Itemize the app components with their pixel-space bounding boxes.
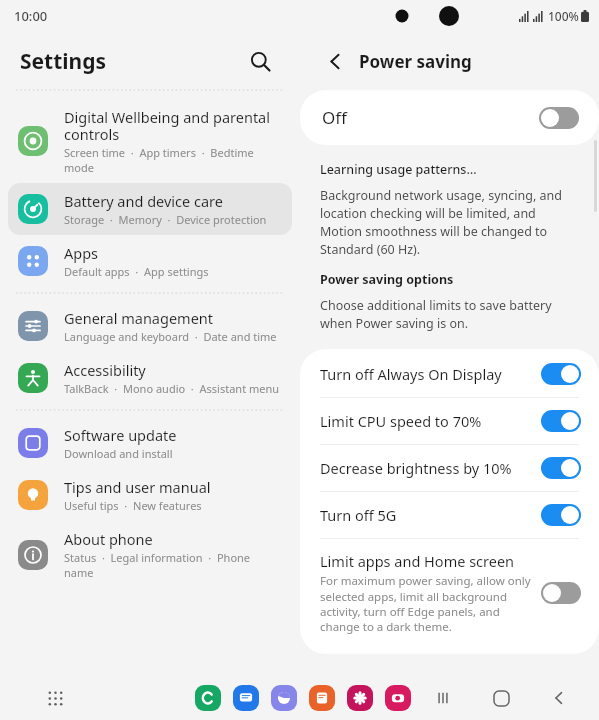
staticText: General management — [64, 308, 214, 328]
button[interactable]: Limit apps and Home screen — [300, 539, 599, 646]
button[interactable]: Home — [487, 684, 515, 712]
staticText: Choose additional limits to save battery… — [320, 297, 579, 332]
button[interactable]: Battery and device care — [8, 183, 292, 235]
staticText: 100% — [548, 8, 579, 24]
button[interactable]: Limit CPU speed to 70% — [300, 398, 599, 444]
staticText: Useful tips · New features — [64, 498, 202, 513]
staticText: Status · Legal information · Phone name — [64, 550, 280, 580]
staticText: Background network usage, syncing, and l… — [320, 187, 579, 258]
staticText: Decrease brightness by 10% — [320, 458, 512, 478]
button[interactable]: Messages — [233, 685, 259, 711]
button[interactable]: Back — [545, 684, 573, 712]
button[interactable]: Notes — [309, 685, 335, 711]
staticText: Default apps · App settings — [64, 264, 209, 279]
staticText: Software update — [64, 425, 177, 445]
button[interactable]: General management — [8, 300, 292, 352]
button[interactable]: On — [541, 363, 581, 385]
staticText: Power saving — [359, 50, 472, 73]
button[interactable]: Off — [300, 90, 599, 145]
button[interactable]: Back — [318, 44, 352, 78]
button[interactable]: Internet — [271, 685, 297, 711]
staticText: Off — [322, 106, 347, 129]
staticText: Apps — [64, 243, 99, 263]
staticText: 10:00 — [14, 7, 48, 25]
button[interactable]: On — [541, 410, 581, 432]
button[interactable]: Phone — [195, 685, 221, 711]
button[interactable]: On — [541, 504, 581, 526]
button[interactable]: Camera — [385, 685, 411, 711]
button[interactable]: Turn off 5G — [300, 492, 599, 538]
button[interactable]: On — [541, 457, 581, 479]
button[interactable]: Search — [240, 41, 280, 81]
button[interactable]: Software update — [8, 417, 292, 469]
staticText: About phone — [64, 529, 153, 549]
staticText: Language and keyboard · Date and time — [64, 329, 277, 344]
button[interactable]: About phone — [8, 521, 292, 588]
button[interactable]: Tips and user manual — [8, 469, 292, 521]
button[interactable]: Accessibility — [8, 352, 292, 404]
staticText: Limit CPU speed to 70% — [320, 411, 482, 431]
staticText: Turn off Always On Display — [320, 364, 502, 384]
button[interactable]: Recents — [429, 684, 457, 712]
staticText: Tips and user manual — [64, 477, 211, 497]
staticText: Download and install — [64, 446, 173, 461]
staticText: Turn off 5G — [320, 505, 397, 525]
staticText: For maximum power saving, allow only sel… — [320, 573, 531, 634]
staticText: Learning usage patterns… — [320, 161, 477, 178]
button[interactable]: Apps — [42, 685, 68, 711]
button[interactable]: Decrease brightness by 10% — [300, 445, 599, 491]
button[interactable]: Digital Wellbeing and parental controls — [8, 99, 292, 183]
staticText: Limit apps and Home screen — [320, 551, 515, 571]
staticText: Settings — [20, 47, 107, 76]
button[interactable]: Gallery — [347, 685, 373, 711]
button[interactable]: Turn off Always On Display — [300, 349, 599, 397]
button[interactable]: Apps — [8, 235, 292, 287]
staticText: Digital Wellbeing and parental controls — [64, 107, 280, 144]
staticText: Power saving options — [320, 271, 454, 288]
staticText: TalkBack · Mono audio · Assistant menu — [64, 381, 280, 396]
button[interactable]: Off — [541, 582, 581, 604]
button[interactable]: Off — [539, 107, 579, 129]
staticText: Battery and device care — [64, 191, 223, 211]
staticText: Accessibility — [64, 360, 146, 380]
staticText: Screen time · App timers · Bedtime mode — [64, 145, 280, 175]
staticText: Storage · Memory · Device protection — [64, 212, 267, 227]
